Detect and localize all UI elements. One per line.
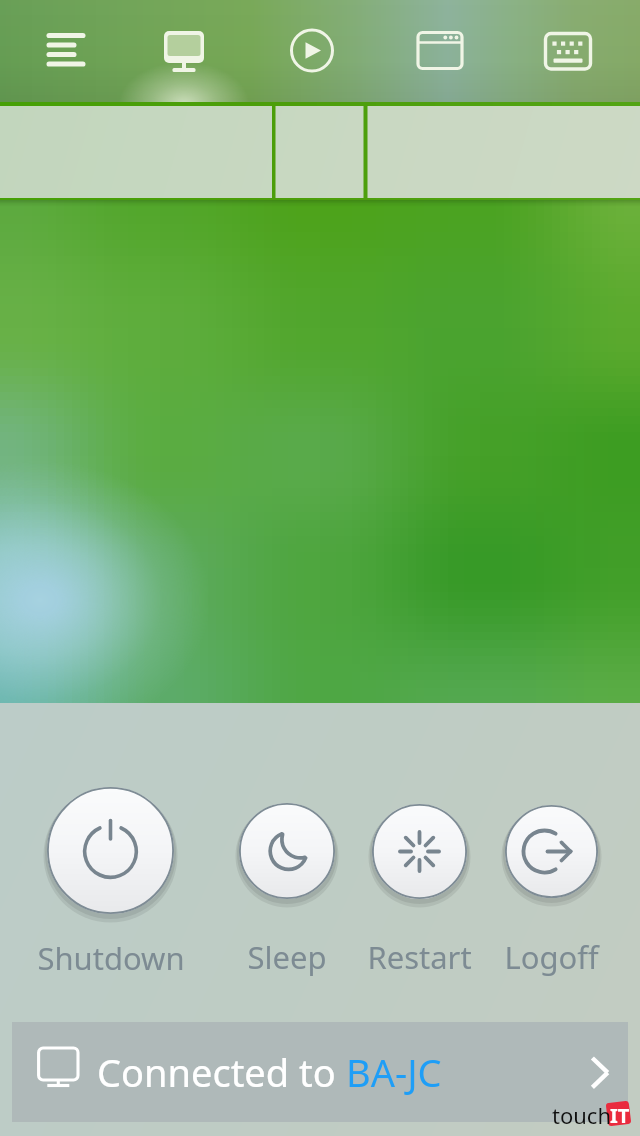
button[interactable]: Display (140, 0, 228, 102)
button[interactable] (0, 102, 273, 200)
button[interactable]: Restart (364, 796, 475, 985)
staticText: touch (552, 1100, 612, 1130)
staticText: IT (610, 1102, 630, 1129)
button[interactable]: Connected to (12, 1022, 628, 1122)
button[interactable]: Keyboard (524, 0, 612, 102)
button[interactable] (367, 102, 640, 200)
button[interactable] (275, 102, 364, 200)
staticText: Logoff (504, 936, 599, 978)
button[interactable]: Sleep (231, 795, 343, 985)
staticText: Shutdown (37, 937, 185, 979)
button[interactable]: Play (268, 0, 356, 102)
staticText: Connected to (97, 1046, 346, 1098)
button[interactable]: Windows (396, 0, 484, 102)
staticText: Restart (367, 936, 472, 978)
button[interactable]: Menu (22, 0, 110, 102)
staticText: BA-JC (346, 1046, 442, 1098)
button[interactable]: Shutdown (39, 779, 182, 986)
staticText: Sleep (247, 936, 327, 978)
button[interactable]: Logoff (497, 797, 606, 985)
